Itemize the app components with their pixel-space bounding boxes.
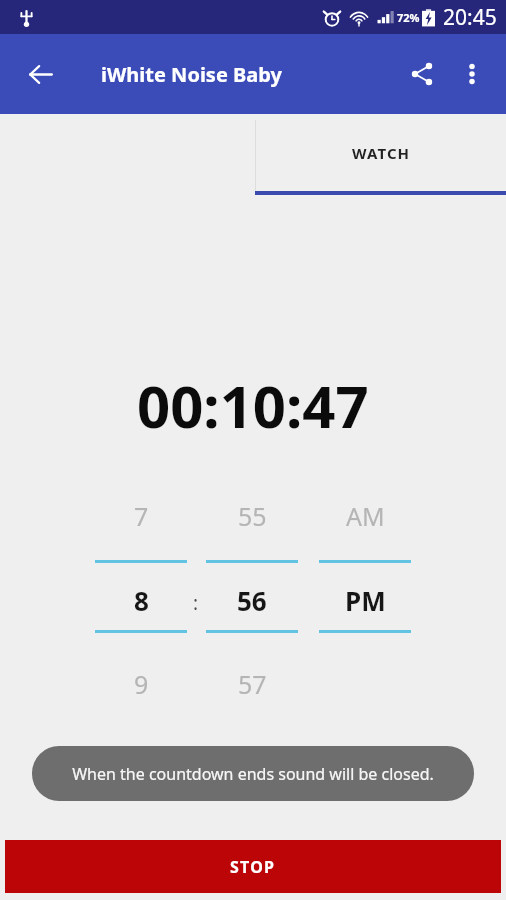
staticText: 9 — [134, 667, 149, 701]
staticText: 20:45 — [443, 3, 497, 32]
staticText: WATCH — [352, 143, 411, 163]
button[interactable]: 56 — [206, 572, 298, 628]
button[interactable]: 57 — [206, 660, 298, 708]
staticText: iWhite Noise Baby — [101, 61, 282, 88]
button[interactable]: AM — [319, 492, 411, 540]
button[interactable]: 7 — [95, 492, 187, 540]
staticText: STOP — [230, 856, 276, 878]
staticText: 8 — [134, 583, 149, 618]
button[interactable]: 9 — [95, 660, 187, 708]
button[interactable]: More options — [448, 50, 496, 98]
staticText: 72% — [397, 10, 420, 25]
button[interactable]: Share — [398, 50, 446, 98]
staticText: When the countdown ends sound will be cl… — [72, 763, 434, 785]
button[interactable]: PM — [319, 572, 411, 628]
button[interactable]: STOP — [5, 840, 501, 893]
staticText: 57 — [238, 667, 267, 701]
staticText: 55 — [238, 499, 267, 533]
staticText: AM — [346, 499, 385, 533]
button[interactable]: 8 — [95, 572, 187, 628]
staticText: 00:10:47 — [137, 366, 369, 445]
staticText: : — [193, 590, 199, 616]
button[interactable]: WATCH — [256, 114, 506, 192]
button[interactable]: When the countdown ends sound will be cl… — [32, 746, 474, 801]
staticText: PM — [345, 583, 386, 618]
button[interactable]: 55 — [206, 492, 298, 540]
button[interactable]: Back — [16, 50, 64, 98]
staticText: 7 — [134, 499, 149, 533]
staticText: 56 — [237, 583, 267, 618]
